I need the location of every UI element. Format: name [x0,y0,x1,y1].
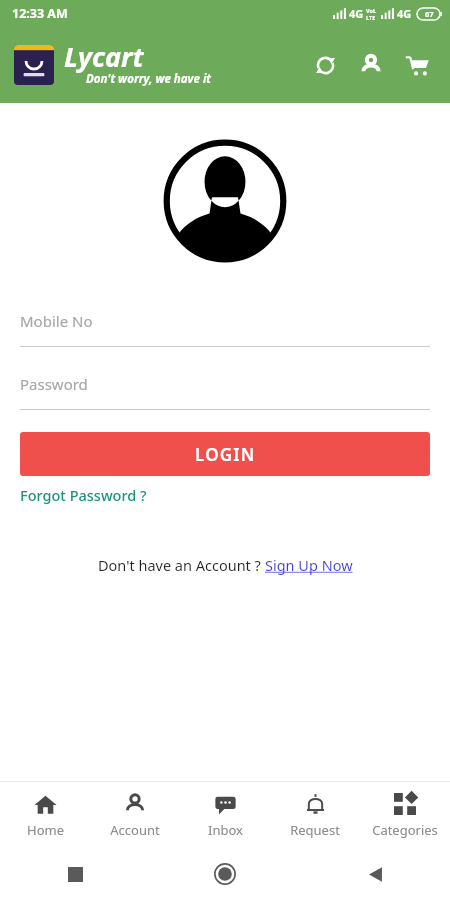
button[interactable]: Mobile No [0,296,450,347]
staticText: 67 [425,9,434,19]
button[interactable]: Password [0,359,450,410]
staticText: Don't worry, we have it [86,71,212,87]
staticText: 12:33 AM [12,5,68,22]
staticText: 4G [349,6,364,21]
staticText: Lycart [64,38,144,75]
staticText: Account [110,821,160,839]
staticText: 4G [397,6,412,21]
button[interactable]: Forgot Password ? [20,483,147,507]
staticText: Home [27,821,64,839]
button[interactable]: Home [0,786,90,845]
button[interactable]: LOGIN [20,432,430,476]
staticText: Categories [372,821,438,839]
staticText: Inbox [208,821,243,839]
staticText: LOGIN [195,443,256,466]
button[interactable]: Home [150,848,300,900]
button[interactable]: Sign Up Now [265,555,353,575]
button[interactable]: Account [352,46,390,84]
button[interactable]: Cart [398,46,436,84]
staticText: Don't have an Account ? [98,555,265,575]
staticText: VoL [366,7,376,14]
button[interactable]: Account [90,786,180,845]
button[interactable]: Inbox [180,786,270,845]
button[interactable]: Request [270,786,360,845]
staticText: Password [20,374,88,394]
staticText: Forgot Password ? [20,485,147,505]
button[interactable]: Refresh [306,46,344,84]
button[interactable]: Categories [360,786,450,845]
button[interactable]: Back [300,848,450,900]
staticText: LTE [366,14,376,21]
button[interactable]: Lycart home [14,45,54,85]
staticText: Request [290,821,340,839]
button[interactable]: Recent apps [0,848,150,900]
staticText: Mobile No [20,311,93,331]
staticText: Sign Up Now [265,555,353,575]
